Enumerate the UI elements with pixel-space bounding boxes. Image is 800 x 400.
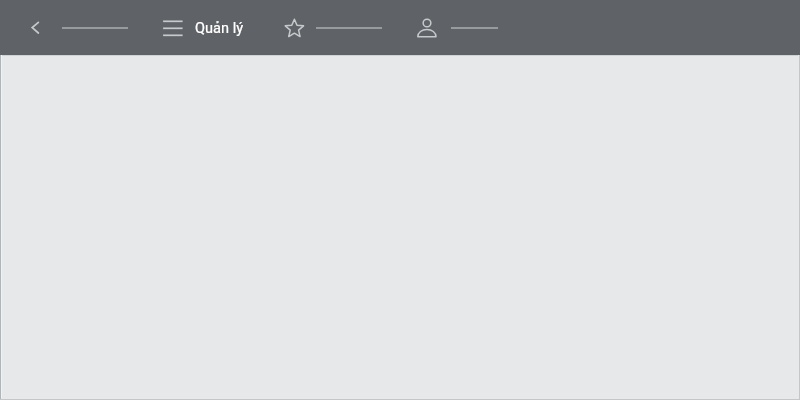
button[interactable]: Back xyxy=(22,12,54,44)
staticText: Quản lý xyxy=(195,19,244,36)
button[interactable]: Account xyxy=(411,12,443,44)
button[interactable]: Menu xyxy=(157,14,189,42)
button[interactable]: Favorite xyxy=(278,13,310,45)
